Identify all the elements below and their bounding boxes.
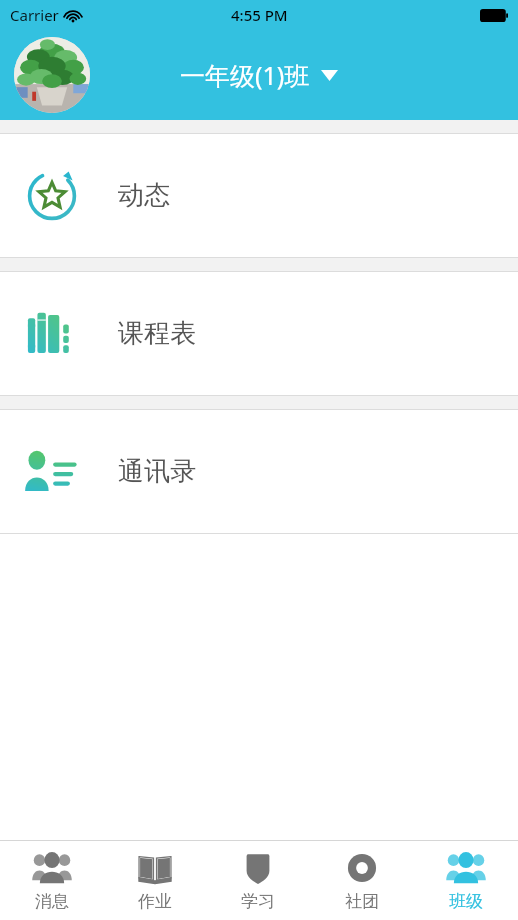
staticText: 社团 [345, 891, 379, 912]
button[interactable]: 通讯录 [0, 410, 518, 533]
button[interactable]: 动态 [0, 134, 518, 257]
staticText: Carrier [10, 5, 59, 25]
staticText: 通讯录 [118, 455, 196, 488]
staticText: 消息 [35, 891, 69, 912]
button[interactable]: 课程表 [0, 272, 518, 395]
staticText: 4:55 PM [231, 5, 288, 25]
button[interactable]: 一年级(1)班 [180, 58, 338, 92]
staticText: 学习 [241, 891, 275, 912]
button[interactable]: 学习 [206, 841, 310, 920]
button[interactable]: 消息 [0, 841, 103, 920]
button[interactable]: 作业 [103, 841, 206, 920]
staticText: 动态 [118, 179, 170, 212]
staticText: 作业 [138, 891, 172, 912]
button[interactable]: 班级 [414, 841, 518, 920]
button[interactable]: 社团 [310, 841, 414, 920]
staticText: 课程表 [118, 317, 196, 350]
staticText: 班级 [449, 891, 483, 912]
button[interactable]: Profile photo [14, 37, 90, 113]
staticText: 一年级(1)班 [180, 58, 310, 92]
